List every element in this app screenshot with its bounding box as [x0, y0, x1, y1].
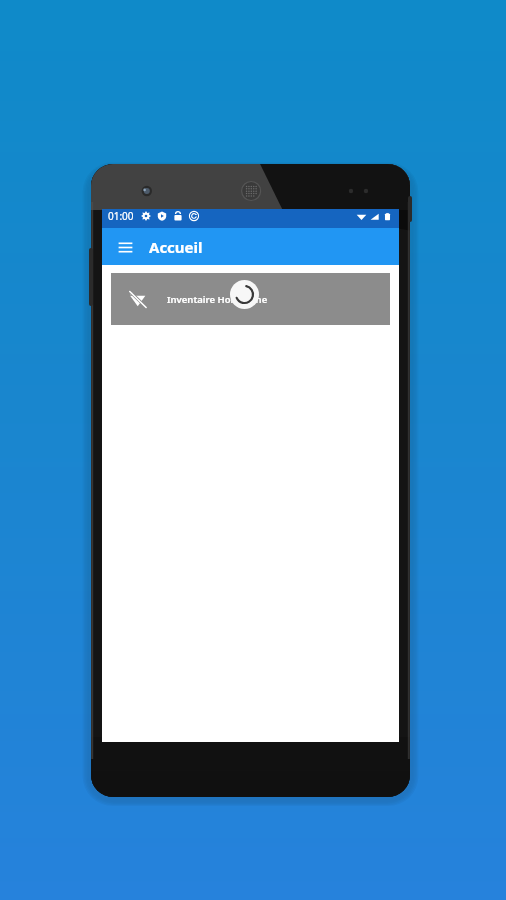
- staticText: Accueil: [149, 237, 203, 257]
- staticText: 01:00: [108, 209, 134, 223]
- button[interactable]: Open navigation menu: [110, 232, 140, 262]
- staticText: Inventaire Hors Ligne: [167, 293, 268, 306]
- button[interactable]: Inventaire Hors Ligne: [111, 273, 390, 325]
